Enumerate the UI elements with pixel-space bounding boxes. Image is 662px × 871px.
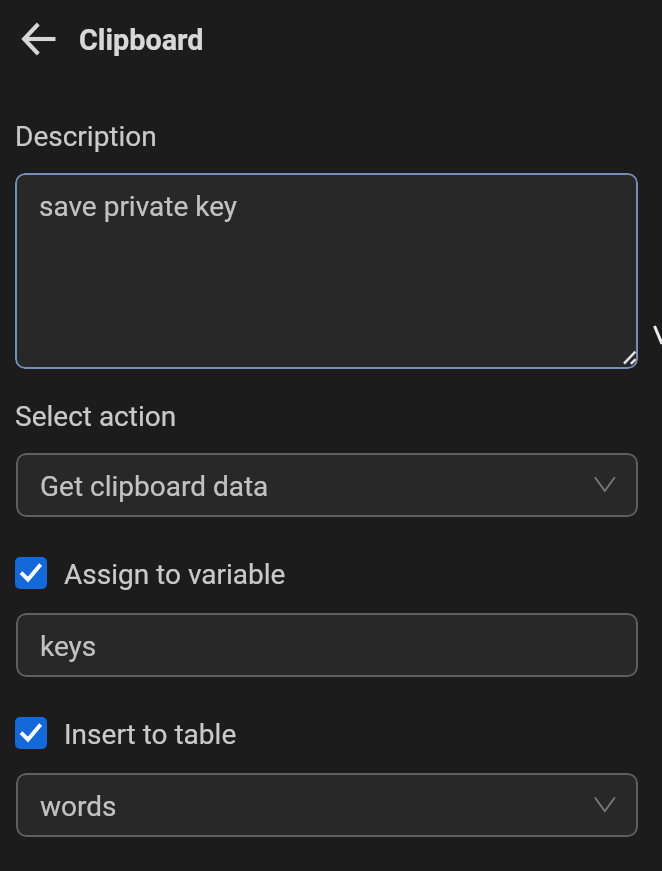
button[interactable]: Assign to variable bbox=[15, 552, 285, 597]
staticText: Get clipboard data bbox=[40, 470, 269, 503]
staticText: save private key bbox=[39, 190, 238, 223]
staticText: Clipboard bbox=[79, 23, 204, 57]
staticText: Assign to variable bbox=[64, 558, 286, 591]
button[interactable]: save private key bbox=[15, 173, 638, 369]
button[interactable]: keys bbox=[16, 613, 638, 677]
staticText: Insert to table bbox=[64, 718, 237, 751]
staticText: words bbox=[40, 790, 117, 823]
staticText: keys bbox=[40, 630, 97, 663]
staticText: Description bbox=[15, 120, 157, 153]
staticText: Select action bbox=[15, 400, 177, 433]
button[interactable]: Get clipboard data bbox=[16, 453, 638, 517]
button[interactable]: Insert to table bbox=[15, 711, 240, 756]
button[interactable]: Back bbox=[8, 8, 70, 70]
button[interactable]: words bbox=[16, 773, 638, 837]
